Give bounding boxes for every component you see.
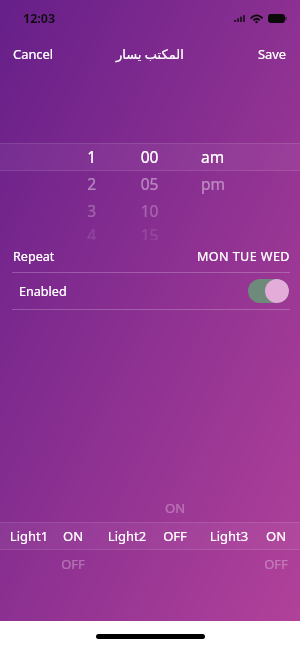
staticText: Save (258, 45, 287, 63)
staticText: ON (145, 499, 205, 517)
button[interactable]: Repeat (0, 240, 300, 272)
staticText: OFF (145, 527, 205, 545)
staticText: am (201, 146, 261, 167)
staticText: المكتب يسار (116, 45, 184, 63)
staticText: ON (43, 527, 103, 545)
staticText: Enabled (19, 283, 67, 300)
staticText: ON (246, 527, 300, 545)
staticText: 00 (131, 146, 168, 167)
button[interactable]: Enabled toggle (248, 279, 289, 303)
staticText: 4 (0, 224, 96, 240)
staticText: Light1 (0, 527, 59, 545)
staticText: 12:03 (23, 10, 56, 27)
staticText: 05 (131, 173, 168, 194)
button[interactable]: Enabled (0, 273, 300, 309)
staticText: 3 (0, 200, 96, 221)
staticText: Light3 (199, 527, 259, 545)
staticText: Cancel (13, 45, 54, 63)
staticText: OFF (246, 555, 300, 573)
button[interactable]: Save (245, 36, 300, 72)
staticText: 1 (0, 146, 96, 167)
button[interactable]: Cancel (0, 36, 67, 72)
staticText: OFF (43, 555, 103, 573)
staticText: 15 (131, 224, 168, 240)
staticText: Light2 (97, 527, 157, 545)
staticText: pm (201, 173, 261, 194)
staticText: MON TUE WED (197, 248, 290, 265)
staticText: 10 (131, 200, 168, 221)
staticText: Repeat (13, 248, 55, 265)
staticText: 2 (0, 173, 96, 194)
